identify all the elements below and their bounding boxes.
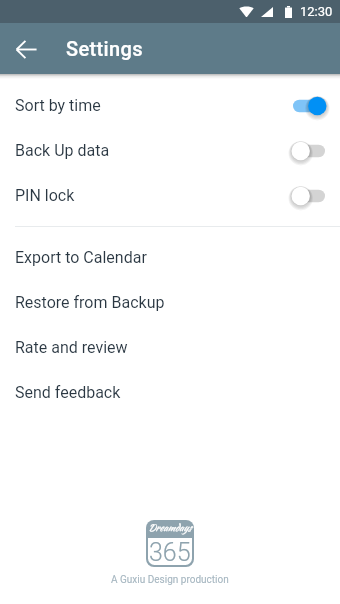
staticText: A Guxiu Design production xyxy=(111,574,229,586)
staticText: 12:30 xyxy=(300,4,333,19)
button[interactable]: Send feedback xyxy=(0,370,340,415)
staticText: Sort by time xyxy=(15,96,101,115)
staticText: Send feedback xyxy=(15,383,121,402)
staticText: 365 xyxy=(149,538,191,567)
staticText: Dreamdays xyxy=(148,521,192,535)
button[interactable]: Rate and review xyxy=(0,325,340,370)
staticText: Export to Calendar xyxy=(15,248,147,267)
staticText: Back Up data xyxy=(15,141,110,160)
staticText: PIN lock xyxy=(15,186,75,205)
staticText: Rate and review xyxy=(15,338,128,357)
button[interactable]: PIN lock xyxy=(0,173,340,218)
button[interactable]: Back xyxy=(8,31,44,67)
button[interactable]: Back Up data xyxy=(0,128,340,173)
staticText: Restore from Backup xyxy=(15,293,165,312)
staticText: Settings xyxy=(66,37,143,60)
button[interactable]: Restore from Backup xyxy=(0,280,340,325)
button[interactable]: Sort by time xyxy=(0,83,340,128)
button[interactable]: Export to Calendar xyxy=(0,235,340,280)
